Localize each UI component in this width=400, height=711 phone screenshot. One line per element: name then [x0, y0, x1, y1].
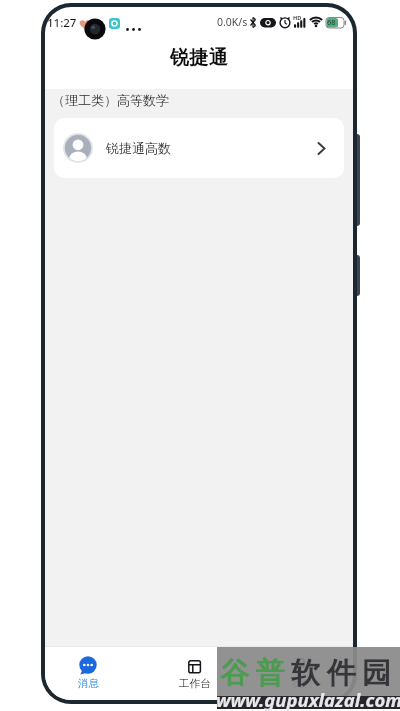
staticText: 0.0K/s	[217, 15, 248, 29]
staticText: 工作台	[179, 677, 211, 690]
button[interactable]: 锐捷通高数	[54, 118, 344, 178]
staticText: 消息	[78, 677, 99, 690]
button[interactable]: 工作台	[171, 648, 218, 698]
staticText: 锐捷通高数	[106, 140, 171, 156]
staticText: 11:27	[47, 15, 77, 31]
button[interactable]: 我的	[278, 648, 324, 698]
staticText: www.gupuxlazal.com	[216, 687, 400, 711]
staticText: （理工类）高等数学	[52, 92, 169, 108]
staticText: 锐捷通	[45, 46, 353, 70]
staticText: HD	[293, 14, 302, 21]
staticText: 谷普软件园	[220, 655, 398, 692]
button[interactable]: 消息	[65, 648, 111, 698]
staticText: 我的	[291, 677, 312, 690]
staticText: 68	[327, 17, 336, 27]
